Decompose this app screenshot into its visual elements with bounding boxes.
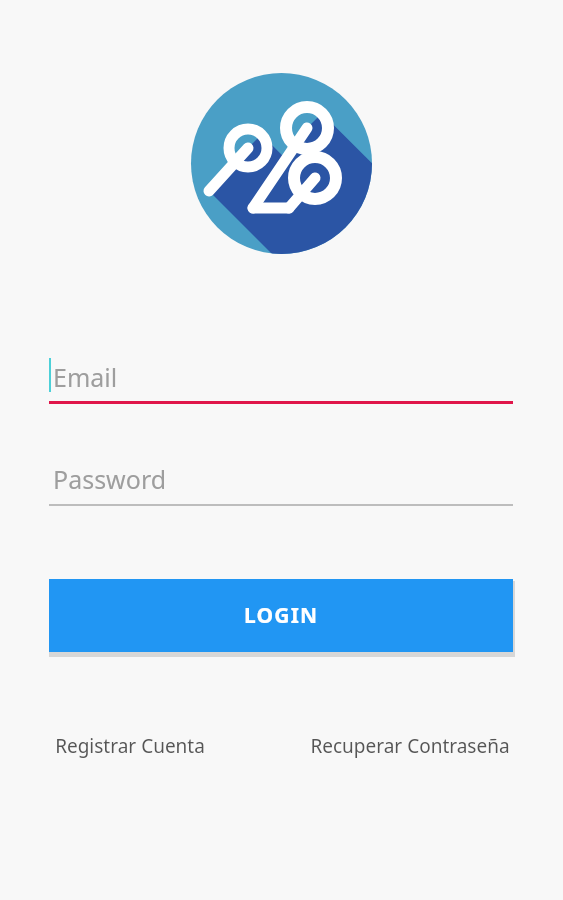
staticText: Registrar Cuenta [55,733,205,759]
button[interactable]: Password [49,454,513,506]
staticText: Email [53,360,118,394]
other: App logo [191,73,372,254]
staticText: Password [53,462,167,496]
button[interactable]: Recuperar Contraseña [290,724,530,768]
button[interactable]: Registrar Cuenta [40,724,220,768]
staticText: Recuperar Contraseña [310,733,510,759]
staticText: LOGIN [244,601,319,630]
button[interactable]: LOGIN [49,579,513,652]
button[interactable]: Email [49,352,513,404]
